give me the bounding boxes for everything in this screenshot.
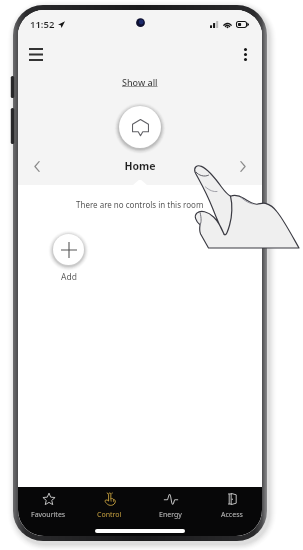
staticText: Access [221,510,243,520]
button[interactable]: Favourites [18,489,79,523]
button[interactable]: Menu [23,41,49,67]
staticText: Control [97,510,122,520]
button[interactable]: Control [79,489,140,523]
button[interactable]: Home room [119,106,161,148]
button[interactable]: Show all [116,74,164,90]
button[interactable]: Add control [53,234,84,265]
button[interactable]: More options [232,41,258,67]
button[interactable]: Next room [230,153,256,179]
button[interactable]: Access [201,489,262,523]
button[interactable]: Previous room [24,153,50,179]
staticText: 11:52 [30,18,55,31]
staticText: There are no controls in this room [76,199,204,210]
staticText: Favourites [31,510,66,520]
staticText: Add [61,271,77,283]
button[interactable]: Energy [140,489,201,523]
staticText: Energy [159,510,182,520]
staticText: Home [50,159,230,173]
